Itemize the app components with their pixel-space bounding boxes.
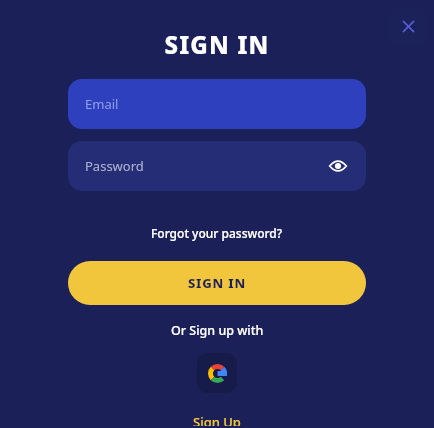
staticText: SIGN IN — [164, 28, 270, 61]
staticText: SIGN IN — [188, 274, 246, 292]
button[interactable]: Close — [389, 7, 427, 45]
staticText: Sign Up — [193, 413, 241, 426]
button[interactable]: SIGN IN — [68, 261, 366, 305]
staticText: Email — [85, 95, 119, 113]
button[interactable]: Email — [68, 79, 366, 129]
staticText: Forgot your password? — [151, 225, 283, 241]
button[interactable]: Forgot your password? — [145, 223, 289, 243]
staticText: Password — [85, 157, 327, 175]
button[interactable]: Show password — [327, 155, 349, 177]
button[interactable]: Sign in with Google — [197, 353, 237, 393]
button[interactable]: Password — [68, 141, 366, 191]
staticText: Or Sign up with — [171, 322, 264, 339]
button[interactable]: Sign Up — [187, 411, 247, 428]
